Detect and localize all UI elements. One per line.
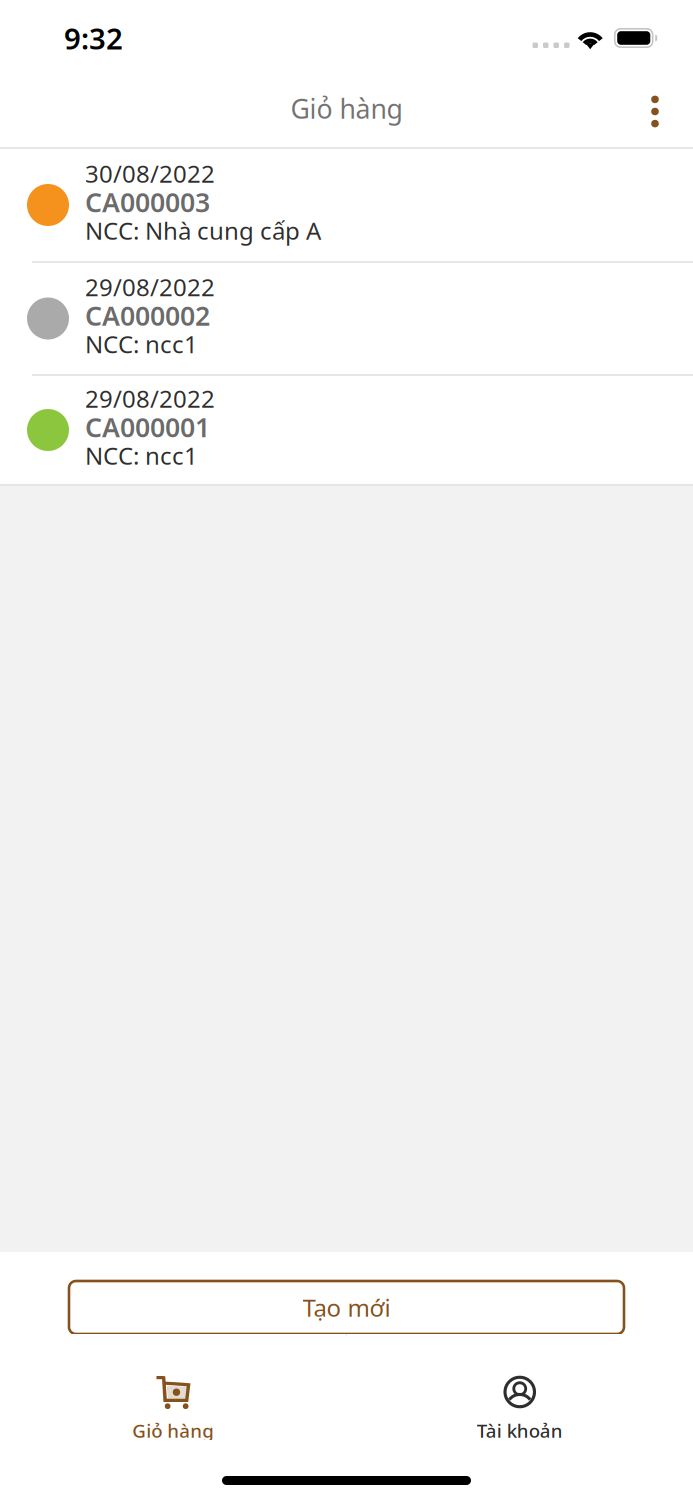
staticText: 9:32 [64, 18, 123, 57]
staticText: CA000001 [85, 409, 210, 445]
staticText: CA000002 [85, 298, 210, 333]
staticText: Giỏ hàng [290, 91, 402, 126]
staticText: 29/08/2022 [85, 271, 215, 303]
button[interactable]: 29/08/2022 [0, 263, 693, 374]
staticText: Tài khoản [477, 1418, 563, 1443]
staticText: 29/08/2022 [85, 383, 215, 414]
button[interactable]: Tài khoản [346, 1334, 693, 1440]
button[interactable]: 30/08/2022 [0, 149, 693, 261]
button[interactable]: 29/08/2022 [0, 376, 693, 484]
button[interactable]: Giỏ hàng [0, 1334, 346, 1440]
staticText: NCC: ncc1 [85, 328, 198, 360]
staticText: Tạo mới [302, 1292, 390, 1323]
button[interactable]: Tạo mới [69, 1281, 624, 1334]
staticText: NCC: ncc1 [85, 440, 198, 471]
staticText: Giỏ hàng [132, 1418, 214, 1443]
staticText: 30/08/2022 [85, 158, 215, 189]
button[interactable]: More options [627, 76, 683, 147]
staticText: NCC: Nhà cung cấp A [85, 215, 321, 246]
staticText: CA000003 [85, 184, 210, 220]
